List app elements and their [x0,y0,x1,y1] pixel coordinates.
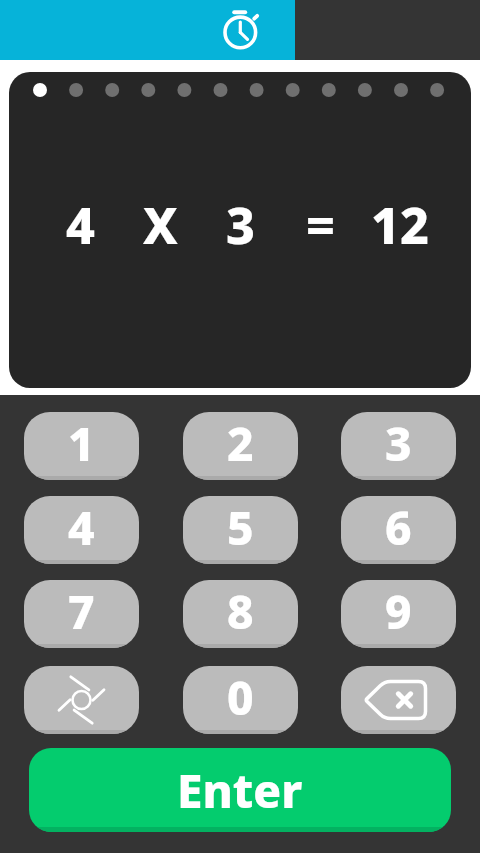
staticText: 7 [68,580,95,643]
button[interactable]: 0 [183,666,298,734]
staticText: = [306,191,335,259]
button[interactable]: 8 [183,580,298,648]
staticText: 2 [227,412,254,475]
staticText: 1 [68,412,95,475]
button[interactable] [341,666,456,734]
button[interactable]: 7 [24,580,139,648]
staticText: 8 [227,580,254,643]
staticText: 6 [385,496,412,559]
button[interactable]: 3 [341,412,456,480]
staticText: Enter [177,759,303,822]
staticText: 9 [385,580,412,643]
button[interactable]: 5 [183,496,298,564]
button[interactable]: 1 [24,412,139,480]
button[interactable]: 4 [24,496,139,564]
staticText: 3 [226,191,255,259]
staticText: 0 [227,666,254,729]
staticText: 4 [66,191,95,259]
staticText: 12 [371,191,429,259]
button[interactable]: Enter [29,748,451,832]
button[interactable]: 6 [341,496,456,564]
button[interactable]: 9 [341,580,456,648]
button[interactable] [24,666,139,734]
staticText: 4 [68,496,95,559]
button[interactable]: 2 [183,412,298,480]
staticText: X [143,191,178,259]
button[interactable] [0,0,295,60]
staticText: 5 [227,496,254,559]
staticText: 3 [385,412,412,475]
